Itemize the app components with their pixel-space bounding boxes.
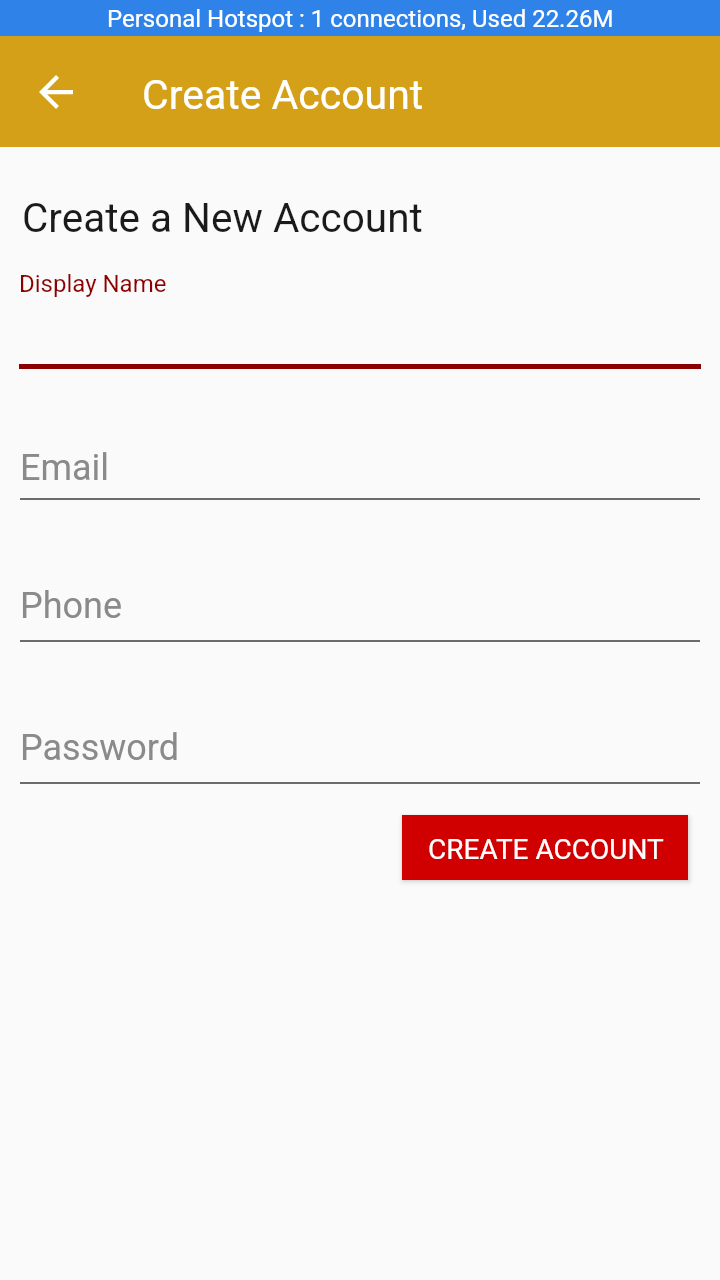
- button[interactable]: CREATE ACCOUNT: [402, 815, 688, 880]
- staticText: Create a New Account: [22, 194, 423, 241]
- button[interactable]: Password: [20, 720, 700, 784]
- staticText: Personal Hotspot : 1 connections, Used 2…: [107, 5, 614, 33]
- staticText: Phone: [20, 585, 123, 627]
- staticText: Create Account: [142, 71, 424, 119]
- button[interactable]: Email: [20, 440, 700, 500]
- button[interactable]: Display Name: [19, 258, 701, 369]
- staticText: CREATE ACCOUNT: [428, 833, 664, 866]
- staticText: Password: [20, 727, 180, 769]
- staticText: Email: [20, 447, 110, 489]
- staticText: Display Name: [19, 270, 167, 298]
- button[interactable]: Navigate up: [28, 64, 84, 120]
- button[interactable]: Phone: [20, 578, 700, 642]
